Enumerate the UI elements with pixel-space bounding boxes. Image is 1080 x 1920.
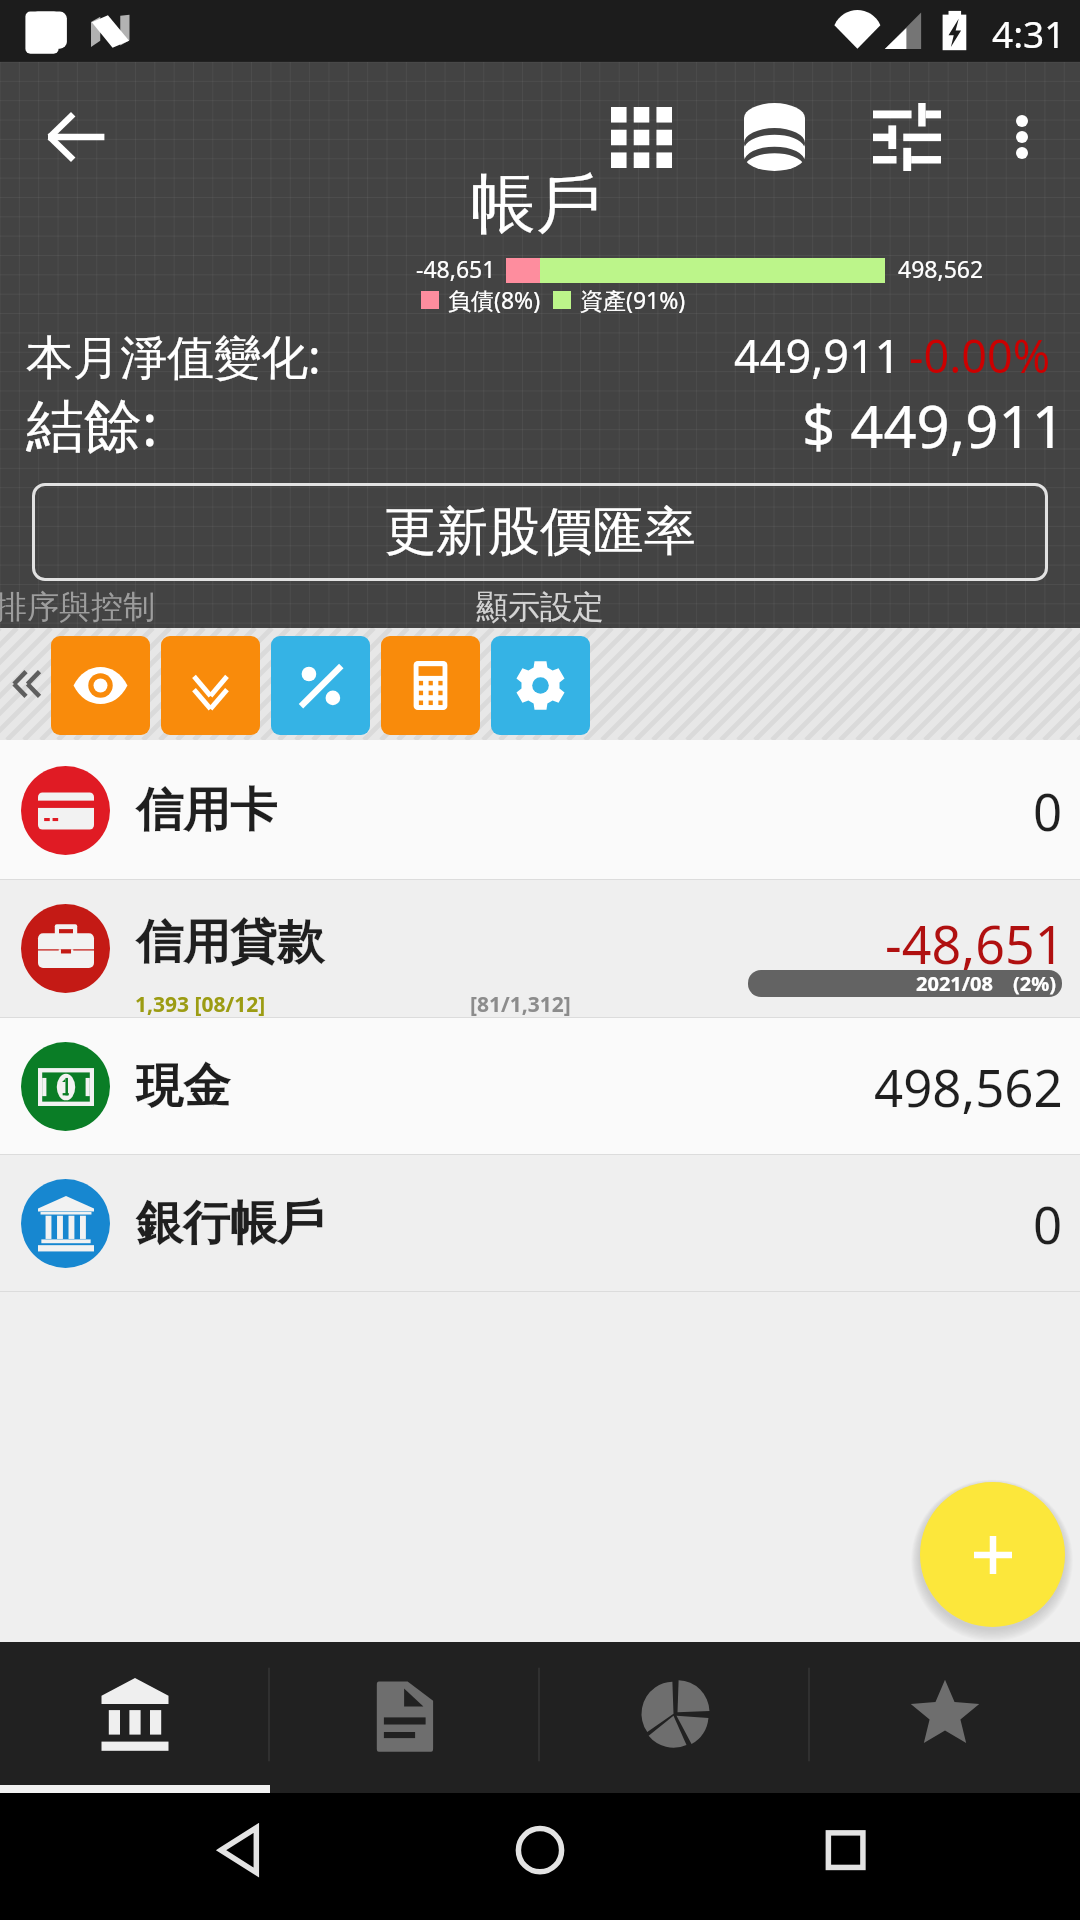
staticText: 1,393 [08/12] (135, 990, 266, 1019)
staticText: 信用卡 (136, 781, 277, 840)
staticText: 結餘: (26, 384, 158, 463)
staticText: 0 (1033, 776, 1063, 845)
button[interactable]: 更新股價匯率 (32, 483, 1048, 581)
button[interactable]: 信用卡 (0, 740, 1080, 880)
staticText: 4:31 (992, 8, 1066, 58)
button[interactable]: Calculator (381, 636, 480, 735)
staticText: 資產(91%) (580, 284, 686, 315)
button[interactable]: Collapse (0, 628, 51, 740)
button[interactable]: Filter (854, 84, 960, 190)
staticText: -48,651 (885, 908, 1065, 979)
staticText: 0 (1033, 1189, 1063, 1258)
staticText: -0.00% (909, 325, 1051, 386)
button[interactable]: Add (920, 1482, 1065, 1627)
button[interactable]: Visibility (51, 636, 150, 735)
staticText: 顯示設定 (476, 587, 604, 627)
button[interactable]: Apps (588, 84, 694, 190)
staticText: 本月淨值變化: (26, 324, 321, 388)
staticText: -48,651 (416, 253, 496, 284)
button[interactable]: Database (721, 84, 827, 190)
staticText: 498,562 (898, 253, 984, 284)
button[interactable]: 現金 (0, 1018, 1080, 1155)
staticText: 2021/08 (2%) (916, 970, 1056, 997)
button[interactable]: Percent (271, 636, 370, 735)
staticText: 498,562 (874, 1052, 1063, 1121)
staticText: 更新股價匯率 (384, 499, 696, 565)
staticText: 排序與控制 (0, 587, 155, 627)
button[interactable]: Accounts (0, 1642, 270, 1793)
staticText: [81/1,312] (470, 990, 571, 1019)
button[interactable]: Settings (491, 636, 590, 735)
staticText: 銀行帳戶 (136, 1194, 324, 1253)
button[interactable]: Records (270, 1642, 540, 1793)
staticText: $ 449,911 (802, 386, 1065, 465)
button[interactable]: More options (974, 89, 1070, 185)
button[interactable]: Favourites (810, 1642, 1080, 1793)
button[interactable]: 銀行帳戶 (0, 1155, 1080, 1292)
staticText: 帳戶 (471, 163, 601, 245)
staticText: 負債(8%) (448, 284, 541, 315)
button[interactable]: Back (22, 84, 128, 190)
staticText: 現金 (136, 1057, 230, 1116)
staticText: 449,911 (734, 325, 901, 386)
button[interactable]: 信用貸款 (0, 880, 1080, 1018)
staticText: 信用貸款 (136, 913, 324, 972)
button[interactable]: Expand (161, 636, 260, 735)
button[interactable]: Charts (540, 1642, 810, 1793)
